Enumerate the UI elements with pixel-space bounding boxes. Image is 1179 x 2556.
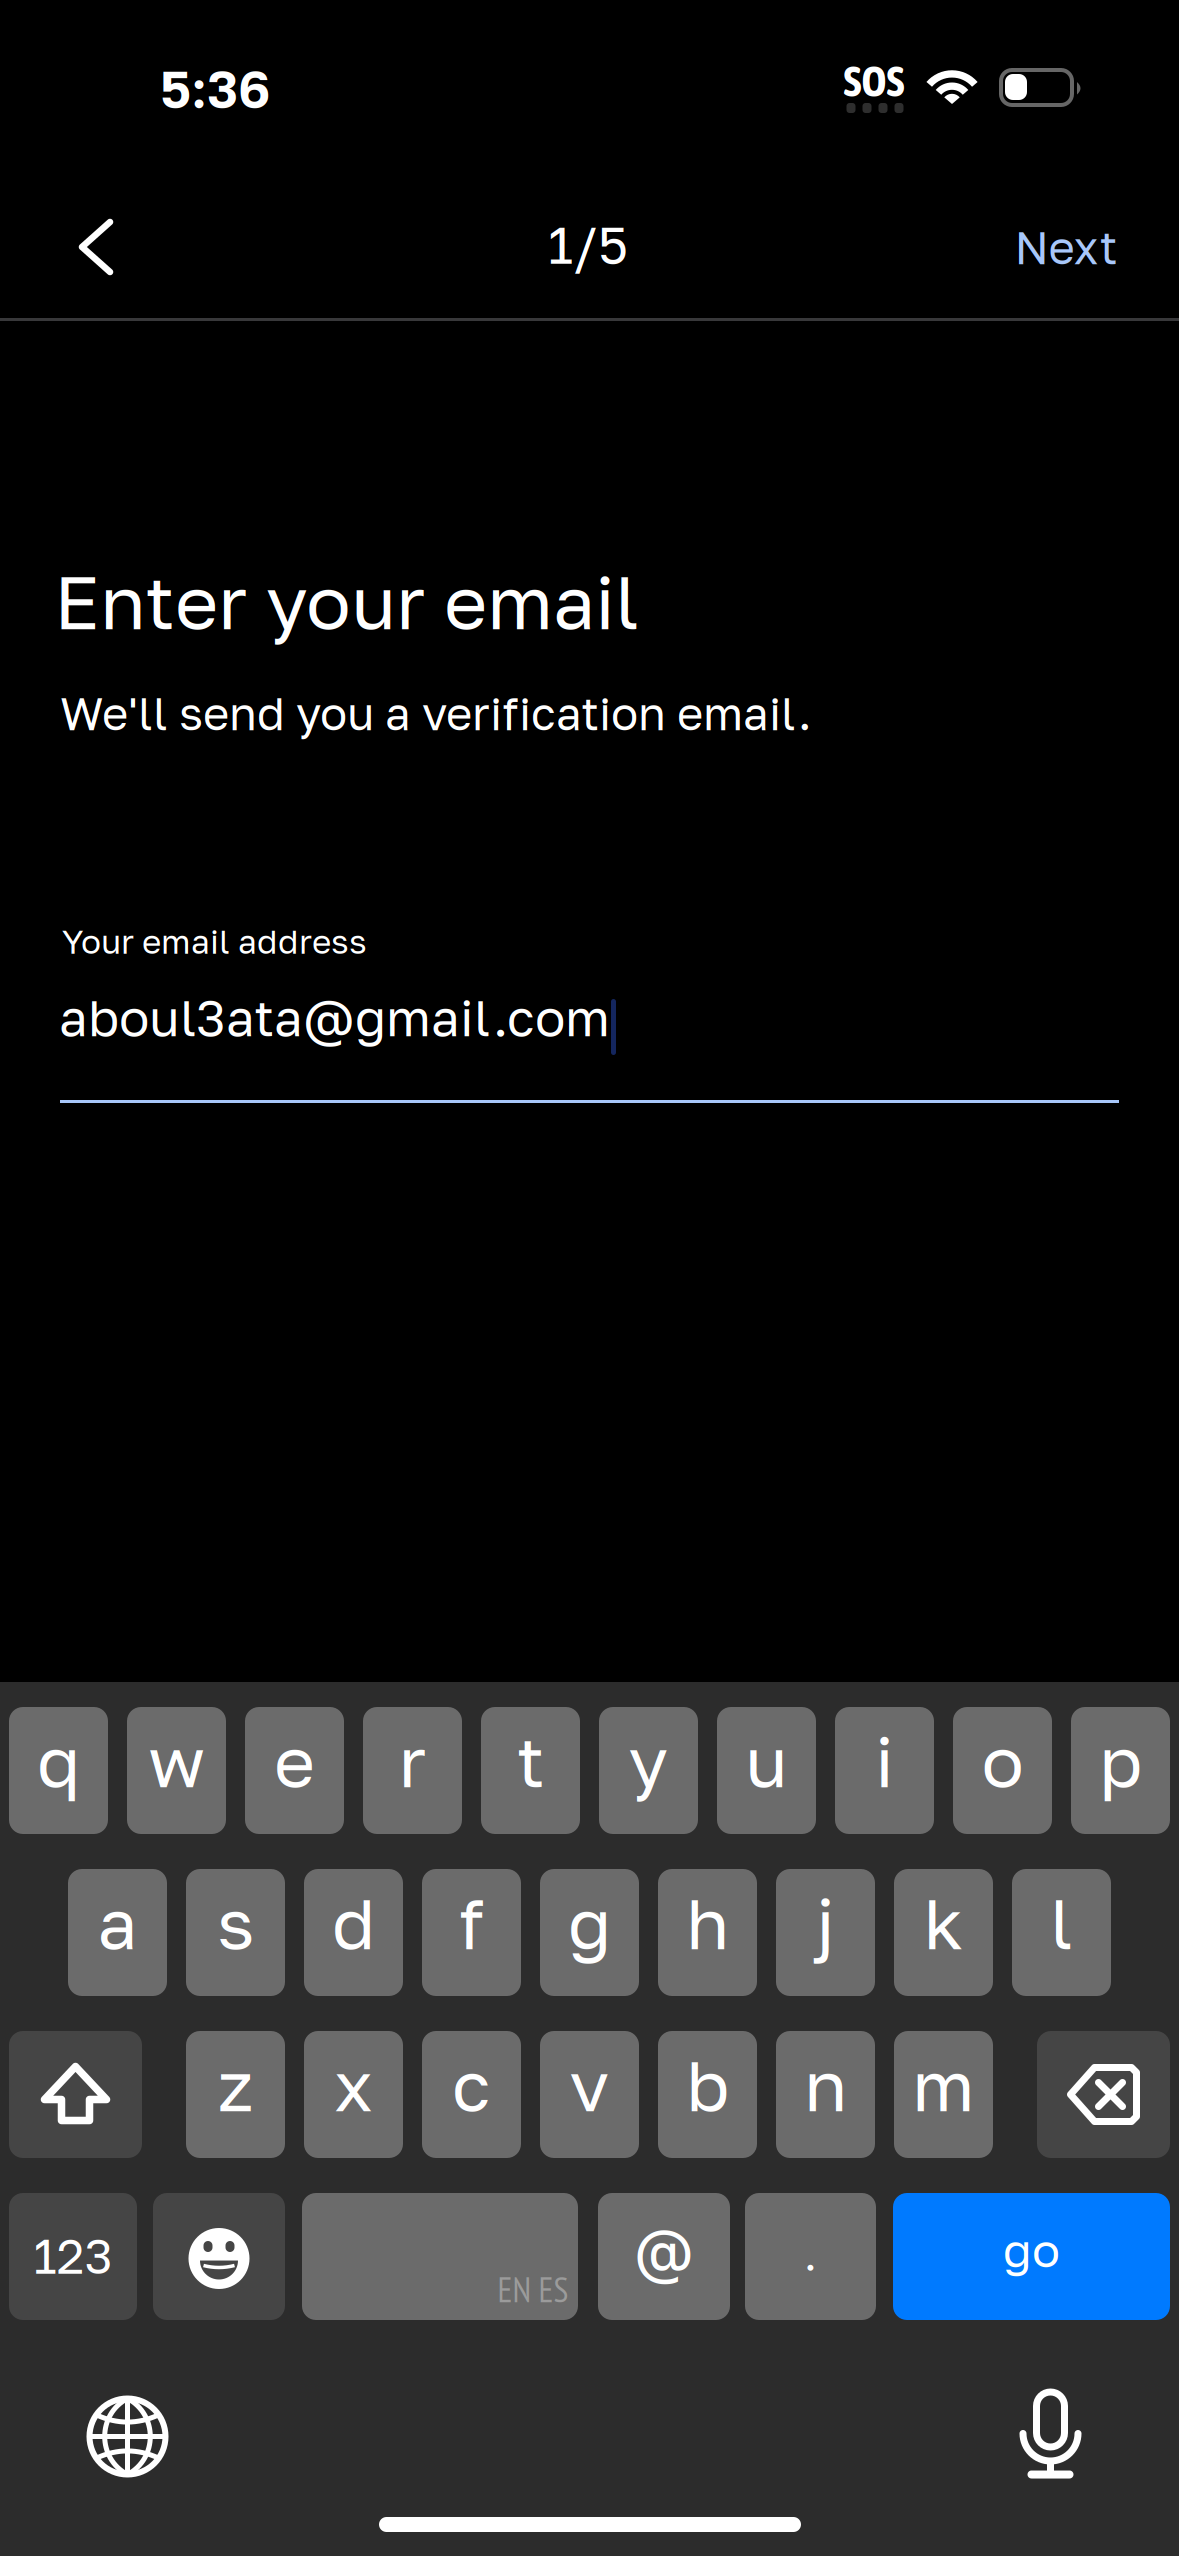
button[interactable]: t <box>481 1707 580 1834</box>
staticText: t <box>516 1718 544 1803</box>
staticText: EN ES <box>497 2267 568 2312</box>
button[interactable]: i <box>835 1707 934 1834</box>
button[interactable]: h <box>658 1869 757 1996</box>
button[interactable]: a <box>68 1869 167 1996</box>
staticText: SOS <box>843 57 904 105</box>
button[interactable]: u <box>717 1707 816 1834</box>
button[interactable]: e <box>245 1707 344 1834</box>
staticText: a <box>97 1880 137 1965</box>
button[interactable]: Next keyboard <box>67 2376 188 2497</box>
button[interactable]: f <box>422 1869 521 1996</box>
button[interactable]: y <box>599 1707 698 1834</box>
button[interactable]: d <box>304 1869 403 1996</box>
staticText: n <box>804 2042 847 2127</box>
button[interactable]: r <box>363 1707 462 1834</box>
staticText: v <box>569 2042 609 2127</box>
button[interactable]: g <box>540 1869 639 1996</box>
staticText: f <box>458 1880 484 1965</box>
staticText: q <box>37 1718 80 1803</box>
staticText: h <box>686 1880 729 1965</box>
staticText: k <box>923 1880 963 1965</box>
staticText: s <box>217 1880 254 1965</box>
button[interactable]: @ <box>598 2193 730 2320</box>
staticText: 123 <box>33 2227 112 2284</box>
button[interactable]: space <box>302 2193 578 2320</box>
staticText: m <box>912 2042 975 2127</box>
staticText: d <box>332 1880 375 1965</box>
staticText: e <box>274 1718 315 1803</box>
staticText: z <box>217 2042 253 2127</box>
staticText: . <box>804 2229 817 2280</box>
button[interactable]: Shift <box>9 2031 142 2158</box>
button[interactable]: Emoji <box>153 2193 285 2320</box>
button[interactable]: q <box>9 1707 108 1834</box>
staticText: o <box>981 1718 1023 1803</box>
staticText: Enter your email <box>54 556 639 646</box>
button[interactable]: m <box>894 2031 993 2158</box>
staticText: p <box>1099 1718 1142 1803</box>
button[interactable]: o <box>953 1707 1052 1834</box>
button[interactable]: p <box>1071 1707 1170 1834</box>
button[interactable]: v <box>540 2031 639 2158</box>
button[interactable]: 123 <box>9 2193 137 2320</box>
staticText: l <box>1050 1880 1073 1965</box>
button[interactable]: c <box>422 2031 521 2158</box>
button[interactable]: b <box>658 2031 757 2158</box>
staticText: We'll send you a verification email. <box>60 686 812 740</box>
staticText: Next <box>1014 220 1117 274</box>
button[interactable]: Back <box>49 189 143 305</box>
staticText: Your email address <box>62 921 367 961</box>
staticText: b <box>686 2042 729 2127</box>
staticText: go <box>1003 2221 1060 2277</box>
button[interactable]: x <box>304 2031 403 2158</box>
staticText: r <box>398 1718 426 1803</box>
button[interactable]: j <box>776 1869 875 1996</box>
staticText: c <box>452 2042 491 2127</box>
button[interactable]: Next <box>991 189 1141 305</box>
button[interactable]: w <box>127 1707 226 1834</box>
staticText: aboul3ata@gmail.com <box>59 987 610 1047</box>
staticText: @ <box>634 2214 694 2285</box>
staticText: j <box>816 1880 835 1965</box>
staticText: 1/5 <box>548 213 628 275</box>
staticText: g <box>568 1880 611 1965</box>
staticText: w <box>148 1718 205 1803</box>
staticText: u <box>745 1718 788 1803</box>
button[interactable]: go <box>893 2193 1170 2320</box>
button[interactable]: k <box>894 1869 993 1996</box>
button[interactable]: n <box>776 2031 875 2158</box>
staticText: i <box>875 1718 894 1803</box>
button[interactable]: Delete <box>1037 2031 1170 2158</box>
button[interactable]: l <box>1012 1869 1111 1996</box>
button[interactable]: s <box>186 1869 285 1996</box>
staticText: y <box>628 1718 668 1803</box>
button[interactable]: . <box>745 2193 876 2320</box>
staticText: 5:36 <box>160 57 270 119</box>
button[interactable]: z <box>186 2031 285 2158</box>
button[interactable]: Dictate <box>990 2374 1111 2495</box>
staticText: x <box>334 2042 373 2127</box>
